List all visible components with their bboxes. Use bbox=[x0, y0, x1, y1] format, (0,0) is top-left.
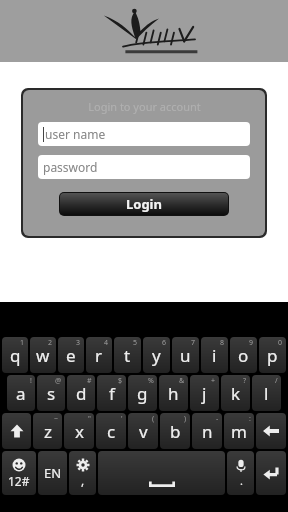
staticText: q bbox=[10, 344, 21, 367]
button[interactable]: Login bbox=[60, 193, 228, 215]
staticText: Login bbox=[126, 195, 162, 213]
staticText: 12# bbox=[8, 473, 30, 489]
staticText: a bbox=[16, 382, 26, 405]
button[interactable]: Symbols bbox=[2, 451, 36, 495]
staticText: @ bbox=[55, 376, 62, 386]
button[interactable]: Enter bbox=[256, 451, 286, 495]
staticText: b bbox=[170, 420, 181, 443]
button[interactable]: % bbox=[128, 375, 157, 411]
staticText: w bbox=[36, 344, 50, 367]
staticText: , bbox=[81, 472, 85, 488]
staticText: k bbox=[231, 382, 241, 405]
button[interactable]: 0 bbox=[259, 337, 286, 373]
staticText: d bbox=[76, 382, 87, 405]
staticText: 3 bbox=[76, 338, 81, 348]
staticText: c bbox=[107, 420, 116, 443]
staticText: user name bbox=[45, 126, 106, 142]
staticText: m bbox=[231, 420, 247, 443]
button[interactable]: # bbox=[67, 375, 95, 411]
button[interactable]: ) bbox=[160, 413, 190, 449]
staticText: j bbox=[202, 382, 207, 405]
button[interactable]: : bbox=[224, 413, 254, 449]
staticText: EN bbox=[44, 464, 62, 482]
staticText: 5 bbox=[133, 338, 138, 348]
button[interactable]: 2 bbox=[30, 337, 56, 373]
button[interactable]: 4 bbox=[86, 337, 112, 373]
button[interactable]: 9 bbox=[230, 337, 257, 373]
button[interactable]: password bbox=[38, 155, 250, 179]
button[interactable]: 1 bbox=[2, 337, 28, 373]
staticText: 0 bbox=[278, 338, 283, 348]
button[interactable]: - bbox=[192, 413, 222, 449]
button[interactable]: user name bbox=[38, 122, 250, 146]
staticText: 7 bbox=[191, 338, 196, 348]
staticText: n bbox=[202, 420, 213, 443]
staticText: ( bbox=[152, 414, 155, 424]
staticText: + bbox=[211, 376, 216, 386]
staticText: 6 bbox=[162, 338, 167, 348]
button[interactable]: Voice input bbox=[227, 451, 254, 495]
staticText: g bbox=[137, 382, 148, 405]
staticText: / bbox=[275, 376, 278, 386]
staticText: $ bbox=[118, 376, 123, 386]
button[interactable]: / bbox=[252, 375, 281, 411]
staticText: x bbox=[75, 420, 84, 443]
staticText: o bbox=[238, 344, 249, 367]
staticText: p bbox=[267, 344, 278, 367]
staticText: ~ bbox=[54, 414, 59, 424]
staticText: i bbox=[212, 344, 217, 367]
staticText: 4 bbox=[104, 338, 109, 348]
button[interactable]: Settings bbox=[69, 451, 96, 495]
staticText: ) bbox=[184, 414, 187, 424]
button[interactable]: + bbox=[190, 375, 219, 411]
button[interactable]: 5 bbox=[114, 337, 141, 373]
button[interactable]: 6 bbox=[143, 337, 170, 373]
staticText: . bbox=[240, 473, 243, 488]
staticText: h bbox=[168, 382, 179, 405]
staticText: l bbox=[264, 382, 269, 405]
button[interactable]: & bbox=[159, 375, 188, 411]
staticText: " bbox=[88, 414, 91, 424]
staticText: 1 bbox=[20, 338, 25, 348]
staticText: v bbox=[139, 420, 148, 443]
button[interactable]: ~ bbox=[33, 413, 62, 449]
staticText: ? bbox=[243, 376, 247, 386]
staticText: t bbox=[124, 344, 131, 367]
staticText: ' bbox=[121, 414, 123, 424]
staticText: y bbox=[152, 344, 161, 367]
staticText: 8 bbox=[220, 338, 225, 348]
staticText: 9 bbox=[249, 338, 254, 348]
staticText: 2 bbox=[48, 338, 53, 348]
button[interactable]: 7 bbox=[172, 337, 199, 373]
button[interactable]: ! bbox=[7, 375, 35, 411]
staticText: e bbox=[66, 344, 76, 367]
staticText: password bbox=[43, 159, 98, 175]
button[interactable]: Backspace bbox=[256, 413, 286, 449]
button[interactable]: Space bbox=[98, 451, 225, 495]
button[interactable]: " bbox=[64, 413, 94, 449]
button[interactable]: Shift bbox=[2, 413, 31, 449]
staticText: Login to your account bbox=[88, 99, 201, 114]
staticText: : bbox=[249, 414, 251, 424]
button[interactable]: ( bbox=[128, 413, 158, 449]
button[interactable]: EN bbox=[38, 451, 67, 495]
staticText: % bbox=[148, 376, 154, 386]
staticText: s bbox=[47, 382, 56, 405]
staticText: - bbox=[216, 414, 219, 424]
button[interactable]: $ bbox=[97, 375, 126, 411]
staticText: z bbox=[44, 420, 52, 443]
button[interactable]: ' bbox=[96, 413, 126, 449]
button[interactable]: ? bbox=[221, 375, 250, 411]
staticText: r bbox=[95, 344, 103, 367]
staticText: & bbox=[179, 376, 185, 386]
staticText: ! bbox=[30, 376, 32, 386]
button[interactable]: 8 bbox=[201, 337, 228, 373]
staticText: f bbox=[109, 382, 115, 405]
staticText: u bbox=[180, 344, 191, 367]
button[interactable]: 3 bbox=[58, 337, 84, 373]
button[interactable]: @ bbox=[37, 375, 65, 411]
staticText: # bbox=[87, 376, 92, 386]
